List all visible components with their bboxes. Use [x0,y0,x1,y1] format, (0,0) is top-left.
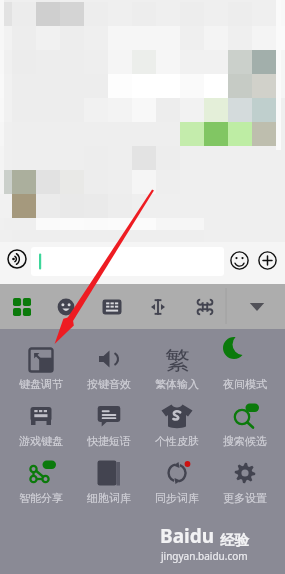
staticText: jingyan.baidu.com [161,549,248,563]
button[interactable]: 键盘调节 [7,345,75,402]
staticText: 经验 [220,531,249,549]
button[interactable]: 搜索候选 [211,402,279,459]
staticText: 个性皮肤 [155,434,199,448]
staticText: 搜索候选 [223,434,267,448]
staticText: 繁 [165,345,190,373]
button[interactable]: 更多设置 [211,459,279,516]
button[interactable]: 快捷短语 [75,402,143,459]
staticText: 快捷短语 [87,434,131,448]
staticText: 夜间模式 [223,377,267,391]
staticText: 同步词库 [155,491,199,505]
button[interactable]: Add [256,249,279,272]
button[interactable]: Voice input [5,247,29,271]
button[interactable]: 游戏键盘 [7,402,75,459]
button[interactable]: 细胞词库 [75,459,143,516]
button[interactable]: 按键音效 [75,345,143,402]
staticText: 繁体输入 [155,377,199,391]
staticText: 智能分享 [19,491,63,505]
staticText: 游戏键盘 [19,434,63,448]
button[interactable]: Collapse [228,284,285,329]
staticText: 按键音效 [87,377,131,391]
button[interactable]: Emoji [43,284,89,329]
button[interactable]: 同步词库 [143,459,211,516]
button[interactable]: Shortcuts [181,284,228,329]
button[interactable]: 智能分享 [7,459,75,516]
button[interactable]: Apps [0,284,43,329]
staticText: 键盘调节 [19,377,63,391]
staticText: 细胞词库 [87,491,131,505]
button[interactable]: Keyboard [89,284,135,329]
button[interactable]: 繁 [143,345,211,402]
button[interactable]: Emoji [228,249,251,272]
button[interactable]: 个性皮肤 [143,402,211,459]
staticText: Baidu [160,523,215,549]
button[interactable]: 夜间模式 [211,345,279,402]
button[interactable]: Cursor [135,284,181,329]
staticText: 更多设置 [223,491,267,505]
